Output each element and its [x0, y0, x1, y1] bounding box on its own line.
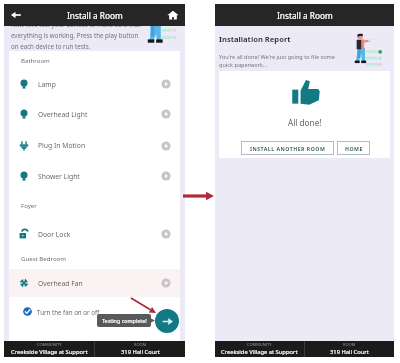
staticText: Plug In Motion	[38, 141, 86, 150]
staticText: everything is working. Press the play bu…	[11, 31, 139, 39]
button[interactable]: Overhead Fan	[9, 269, 180, 297]
button[interactable]: HOME	[337, 141, 370, 155]
button[interactable]: Plug In Motion	[9, 130, 180, 161]
staticText: Install a Room	[67, 10, 123, 21]
staticText: 319 Hall Court	[330, 348, 369, 356]
button[interactable]: ROOM	[305, 341, 394, 357]
button[interactable]: Door Lock	[9, 220, 180, 248]
staticText: Creekside Village at Support	[11, 348, 88, 356]
button[interactable]: Overhead Light	[9, 99, 180, 129]
staticText: quick paperwork...	[219, 61, 268, 69]
staticText: Overhead Light	[38, 110, 88, 119]
staticText: on each device to run tests.	[11, 42, 91, 50]
staticText: Guest Bedroom	[21, 254, 66, 262]
staticText: Lamp	[38, 80, 56, 89]
staticText: 319 Hall Court	[121, 348, 160, 356]
staticText: Bathroom	[21, 56, 50, 64]
staticText: COMMUNITY	[37, 342, 62, 347]
staticText: COMMUNITY	[247, 342, 272, 347]
staticText: ROOM	[343, 342, 356, 347]
staticText: You're all done! We're just going to fil…	[219, 53, 335, 61]
staticText: Now let's test your devices to make sure…	[11, 20, 141, 28]
button[interactable]: Home	[161, 4, 185, 26]
staticText: Overhead Fan	[38, 279, 83, 288]
button[interactable]: COMMUNITY	[215, 341, 304, 357]
button[interactable]: Shower Light	[9, 161, 180, 191]
staticText: Testing complete!	[102, 317, 147, 324]
staticText: Shower Light	[38, 172, 80, 181]
button[interactable]: Back	[4, 4, 28, 26]
staticText: Door Lock	[38, 230, 71, 239]
button[interactable]: Next	[155, 309, 179, 333]
staticText: Creekside Village at Support	[221, 348, 298, 356]
staticText: All done!	[288, 117, 322, 128]
button[interactable]: COMMUNITY	[4, 341, 94, 357]
button[interactable]: Lamp	[9, 70, 180, 98]
staticText: HOME	[345, 145, 363, 152]
button[interactable]: INSTALL ANOTHER ROOM	[241, 141, 334, 155]
staticText: Install a Room	[277, 10, 333, 21]
button[interactable]: ROOM	[95, 341, 185, 357]
staticText: ROOM	[134, 342, 147, 347]
staticText: Foyer	[21, 201, 37, 209]
staticText: Installation Report	[219, 34, 291, 44]
staticText: INSTALL ANOTHER ROOM	[250, 145, 326, 152]
staticText: Turn the fan on or off	[37, 308, 100, 316]
button[interactable]: Turn the fan on or off	[9, 298, 180, 325]
